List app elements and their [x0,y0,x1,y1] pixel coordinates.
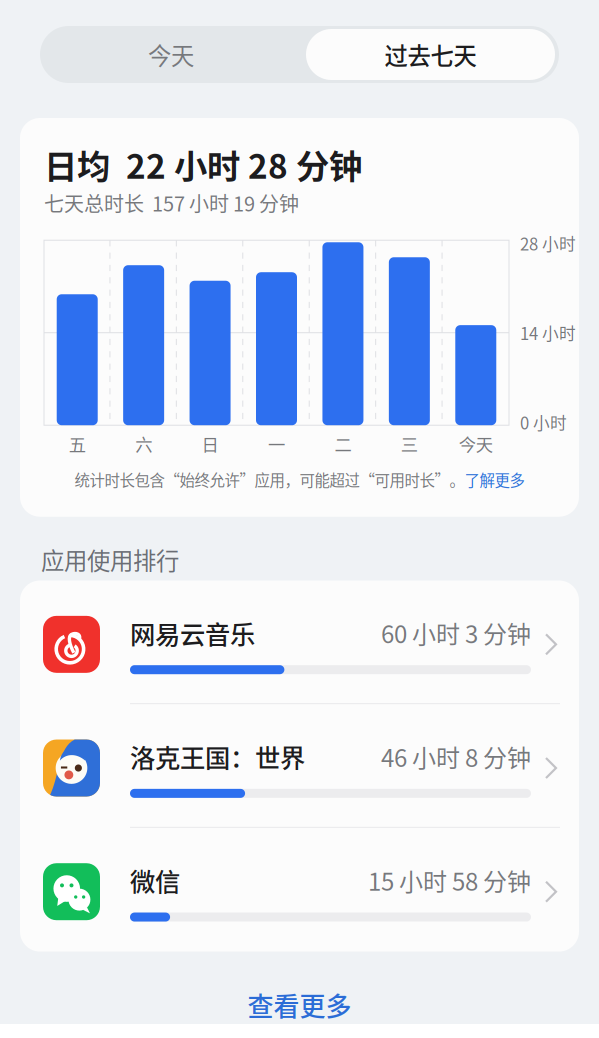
staticText: 洛克王国：世界 [130,738,305,775]
staticText: 七天总时长 157 小时 19 分钟 [44,188,299,217]
staticText: 六 [135,431,152,456]
staticText: 过去七天 [384,38,476,71]
staticText: 五 [69,431,86,456]
staticText: 今天 [148,38,194,71]
button[interactable]: 微信 [20,828,579,952]
button[interactable]: 网易云音乐 [20,580,579,704]
staticText: 二 [334,431,351,456]
staticText: 60 小时 3 分钟 [381,615,531,650]
button[interactable]: 洛克王国：世界 [20,704,579,828]
staticText: 今天 [459,431,493,456]
staticText: 15 小时 58 分钟 [368,863,531,898]
staticText: 查看更多 [247,986,351,1023]
staticText: 日 [202,431,219,456]
button[interactable]: 过去七天 [302,26,559,83]
staticText: 应用使用排行 [41,543,179,576]
button[interactable]: 查看更多 [20,980,579,1030]
staticText: 网易云音乐 [130,614,255,651]
button[interactable]: 了解更多 [464,468,524,491]
staticText: 28 小时 [520,231,576,255]
staticText: 46 小时 8 分钟 [381,739,531,774]
staticText: 一 [268,431,285,456]
staticText: 微信 [130,862,180,899]
staticText: 日均 22 小时 28 分钟 [44,140,362,188]
button[interactable]: 今天 [40,26,302,83]
staticText: 0 小时 [520,410,567,434]
staticText: 了解更多 [464,468,524,491]
staticText: 三 [401,431,418,456]
staticText: 14 小时 [520,321,576,345]
staticText: 统计时长包含“始终允许”应用，可能超过“可用时长”。 [74,468,464,491]
